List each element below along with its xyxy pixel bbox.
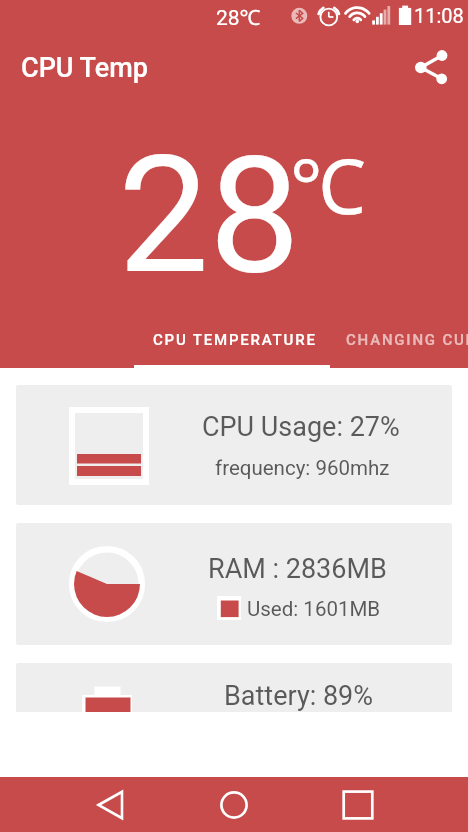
button[interactable]: Home: [206, 777, 262, 832]
staticText: 28: [118, 121, 301, 311]
button[interactable]: CPU TEMPERATURE: [137, 314, 333, 366]
button[interactable]: RAM : 2836MB: [16, 523, 452, 645]
staticText: frequency: 960mhz: [215, 456, 390, 480]
staticText: ℃: [290, 133, 366, 237]
button[interactable]: Battery: 89%: [16, 663, 452, 712]
staticText: CHANGING CURVE: [346, 331, 468, 349]
button[interactable]: CPU Usage: 27%: [16, 385, 452, 505]
button[interactable]: Recents: [330, 777, 386, 832]
button[interactable]: Back: [82, 777, 138, 832]
button[interactable]: CHANGING CURVE: [330, 314, 468, 366]
button[interactable]: Share: [407, 43, 455, 91]
staticText: Used: 1601MB: [247, 597, 381, 621]
staticText: RAM : 2836MB: [208, 553, 387, 585]
staticText: Battery: 89%: [224, 680, 374, 712]
staticText: 11:08: [414, 4, 464, 27]
staticText: CPU Usage: 27%: [202, 411, 400, 443]
staticText: CPU Temp: [21, 52, 148, 84]
staticText: CPU TEMPERATURE: [153, 331, 317, 349]
staticText: 28℃: [216, 3, 261, 31]
